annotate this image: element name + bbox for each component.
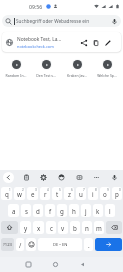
- button[interactable]: Back: [3, 172, 14, 183]
- button[interactable]: f: [45, 204, 55, 217]
- staticText: w: [17, 190, 22, 198]
- button[interactable]: Emoji: [26, 238, 36, 251]
- staticText: d: [36, 207, 40, 215]
- staticText: 5: [59, 188, 61, 192]
- button[interactable]: Voice input: [109, 172, 120, 183]
- button[interactable]: i: [88, 187, 98, 200]
- staticText: Welche Sp...: [92, 73, 122, 78]
- staticText: u: [79, 190, 83, 198]
- button[interactable]: Stickers: [56, 172, 67, 183]
- staticText: i: [92, 190, 94, 198]
- button[interactable]: d: [33, 204, 43, 217]
- staticText: DE • EN: [53, 242, 68, 248]
- staticText: l: [109, 207, 111, 215]
- button[interactable]: x: [33, 221, 44, 234]
- button[interactable]: Welche Sp...: [92, 59, 122, 78]
- staticText: a: [12, 207, 16, 215]
- button[interactable]: /: [16, 238, 24, 251]
- staticText: k: [96, 207, 100, 215]
- staticText: Den Test s...: [31, 73, 61, 78]
- button[interactable]: Den Test s...: [31, 59, 61, 78]
- staticText: j: [85, 207, 87, 215]
- button[interactable]: k: [93, 204, 103, 217]
- staticText: x: [37, 224, 41, 232]
- button[interactable]: o: [100, 187, 110, 200]
- staticText: .: [88, 241, 90, 249]
- button[interactable]: y: [20, 221, 31, 234]
- staticText: 6: [71, 188, 73, 192]
- button[interactable]: b: [70, 221, 80, 234]
- staticText: s: [25, 207, 28, 215]
- staticText: t: [56, 190, 59, 198]
- button[interactable]: v: [58, 221, 68, 234]
- button[interactable]: More options: [91, 172, 102, 183]
- button[interactable]: q: [1, 187, 12, 200]
- staticText: notebookcheck.com: [17, 44, 54, 49]
- button[interactable]: u: [76, 187, 86, 200]
- button[interactable]: m: [94, 221, 104, 234]
- button[interactable]: h: [69, 204, 79, 217]
- staticText: e: [31, 190, 35, 198]
- staticText: 9: [107, 188, 109, 192]
- button[interactable]: Random In...: [1, 59, 31, 78]
- button[interactable]: Copy: [90, 37, 101, 48]
- button[interactable]: c: [46, 221, 56, 234]
- staticText: z: [68, 190, 71, 198]
- button[interactable]: Notebook Test, La...: [2, 32, 121, 52]
- button[interactable]: s: [21, 204, 31, 217]
- staticText: m: [96, 224, 102, 232]
- staticText: b: [73, 224, 77, 232]
- staticText: y: [24, 224, 28, 232]
- staticText: 3: [35, 188, 37, 192]
- button[interactable]: Edit: [102, 37, 113, 48]
- staticText: 09:56: [29, 3, 43, 10]
- button[interactable]: t: [52, 187, 62, 200]
- button[interactable]: p: [112, 187, 122, 200]
- staticText: 2: [22, 188, 24, 192]
- button[interactable]: Share: [78, 37, 89, 48]
- staticText: f: [49, 207, 52, 215]
- staticText: Notebook Test, La...: [17, 36, 62, 43]
- staticText: 1: [9, 188, 11, 192]
- staticText: v: [61, 224, 65, 232]
- staticText: p: [115, 190, 119, 198]
- staticText: 4: [47, 188, 49, 192]
- button[interactable]: g: [57, 204, 67, 217]
- staticText: 8: [95, 188, 97, 192]
- button[interactable]: ?123: [1, 238, 14, 251]
- other: Voice search: [111, 18, 118, 25]
- staticText: r: [44, 190, 47, 198]
- button[interactable]: w: [14, 187, 25, 200]
- staticText: q: [5, 190, 9, 198]
- button[interactable]: GIF: [74, 172, 85, 183]
- button[interactable]: a: [8, 204, 19, 217]
- button[interactable]: Enter: [95, 238, 122, 251]
- button[interactable]: l: [105, 204, 115, 217]
- staticText: Kraken Jav...: [62, 73, 92, 78]
- button[interactable]: j: [81, 204, 91, 217]
- button[interactable]: e: [27, 187, 38, 200]
- staticText: h: [72, 207, 76, 215]
- button[interactable]: Backspace: [106, 221, 122, 234]
- button[interactable]: Kraken Jav...: [62, 59, 92, 78]
- staticText: ?123: [3, 242, 13, 248]
- staticText: 7: [83, 188, 85, 192]
- staticText: o: [103, 190, 107, 198]
- button[interactable]: .: [84, 238, 93, 251]
- button[interactable]: Shift: [1, 221, 18, 234]
- button[interactable]: r: [40, 187, 50, 200]
- button[interactable]: Recent apps: [23, 259, 34, 270]
- staticText: g: [60, 207, 64, 215]
- button[interactable]: z: [64, 187, 74, 200]
- staticText: Random In...: [1, 73, 31, 78]
- staticText: 0: [119, 188, 121, 192]
- button[interactable]: Settings: [38, 172, 49, 183]
- button[interactable]: DE • EN: [38, 238, 82, 251]
- button[interactable]: Suchbegriff oder Webadresse ein: [2, 15, 121, 27]
- button[interactable]: Back: [77, 259, 88, 270]
- staticText: c: [50, 224, 53, 232]
- button[interactable]: Clipboard: [21, 172, 32, 183]
- staticText: Suchbegriff oder Webadresse ein: [16, 18, 90, 24]
- button[interactable]: Home: [50, 259, 61, 270]
- button[interactable]: n: [82, 221, 92, 234]
